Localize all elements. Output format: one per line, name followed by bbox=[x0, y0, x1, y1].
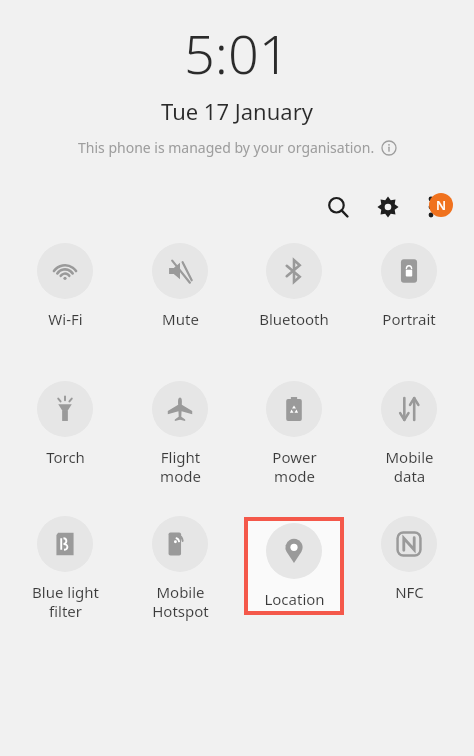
staticText: Power mode bbox=[272, 447, 317, 486]
button[interactable]: Settings bbox=[368, 187, 408, 227]
staticText: Wi-Fi bbox=[48, 309, 83, 329]
staticText: Mobile Hotspot bbox=[152, 582, 209, 621]
staticText: NFC bbox=[395, 582, 424, 602]
button[interactable]: Torch bbox=[15, 381, 115, 467]
button[interactable]: More options bbox=[416, 187, 456, 227]
staticText: Tue 17 January bbox=[161, 96, 313, 126]
button[interactable]: Flight mode bbox=[130, 381, 230, 486]
button[interactable]: Blue light filter bbox=[15, 516, 115, 621]
staticText: Torch bbox=[46, 447, 85, 467]
staticText: Blue light filter bbox=[32, 582, 99, 621]
button[interactable]: Mobile Hotspot bbox=[130, 516, 230, 621]
button[interactable]: Power mode bbox=[244, 381, 344, 486]
button[interactable]: Search bbox=[318, 187, 358, 227]
button[interactable]: Location bbox=[244, 523, 344, 609]
button[interactable]: More information bbox=[381, 140, 397, 156]
staticText: Flight mode bbox=[160, 447, 201, 486]
staticText: Bluetooth bbox=[259, 309, 329, 329]
staticText: Location bbox=[264, 589, 325, 609]
staticText: This phone is managed by your organisati… bbox=[78, 138, 375, 157]
button[interactable]: NFC bbox=[359, 516, 459, 602]
button[interactable]: Wi-Fi bbox=[15, 243, 115, 329]
staticText: Mobile data bbox=[385, 447, 434, 486]
staticText: 5:01 bbox=[184, 16, 290, 90]
staticText: N bbox=[436, 196, 447, 214]
button[interactable]: Portrait bbox=[359, 243, 459, 329]
button[interactable]: Mobile data bbox=[359, 381, 459, 486]
button[interactable]: Mute bbox=[130, 243, 230, 329]
staticText: Portrait bbox=[382, 309, 436, 329]
staticText: Mute bbox=[162, 309, 199, 329]
button[interactable]: Bluetooth bbox=[244, 243, 344, 329]
